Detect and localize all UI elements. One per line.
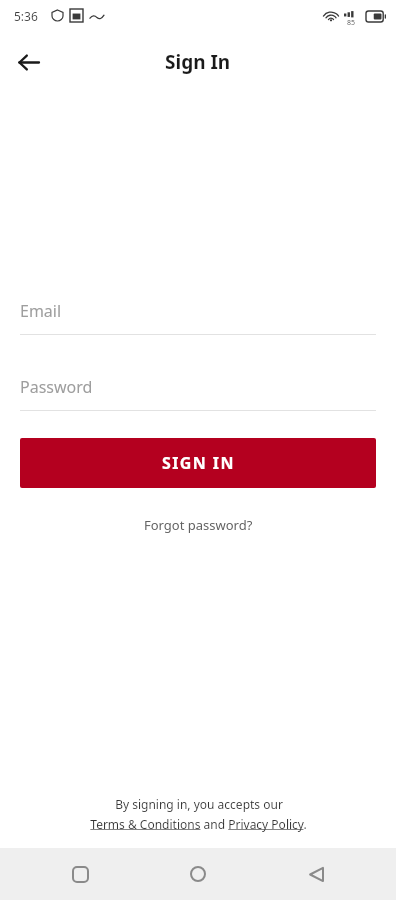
button[interactable]: Password — [20, 364, 376, 411]
staticText: 5:36 — [14, 8, 38, 24]
staticText: Terms & Conditions and Privacy Policy. — [90, 816, 307, 832]
button[interactable]: Forgot password? — [136, 512, 261, 538]
staticText: By signing in, you accepts our — [115, 796, 283, 812]
staticText: 85 — [347, 18, 356, 28]
button[interactable]: Back — [296, 854, 336, 894]
staticText: Email — [20, 300, 62, 322]
staticText: SIGN IN — [162, 452, 235, 474]
button[interactable]: SIGN IN — [20, 438, 376, 488]
button[interactable]: Recents — [60, 854, 100, 894]
button[interactable]: Email — [20, 288, 376, 335]
button[interactable]: Back — [10, 44, 46, 80]
button[interactable]: Home — [178, 854, 218, 894]
staticText: Password — [20, 376, 93, 398]
button[interactable]: Terms & Conditions and Privacy Policy. — [90, 816, 307, 832]
staticText: Sign In — [165, 49, 231, 75]
staticText: Forgot password? — [144, 516, 253, 534]
